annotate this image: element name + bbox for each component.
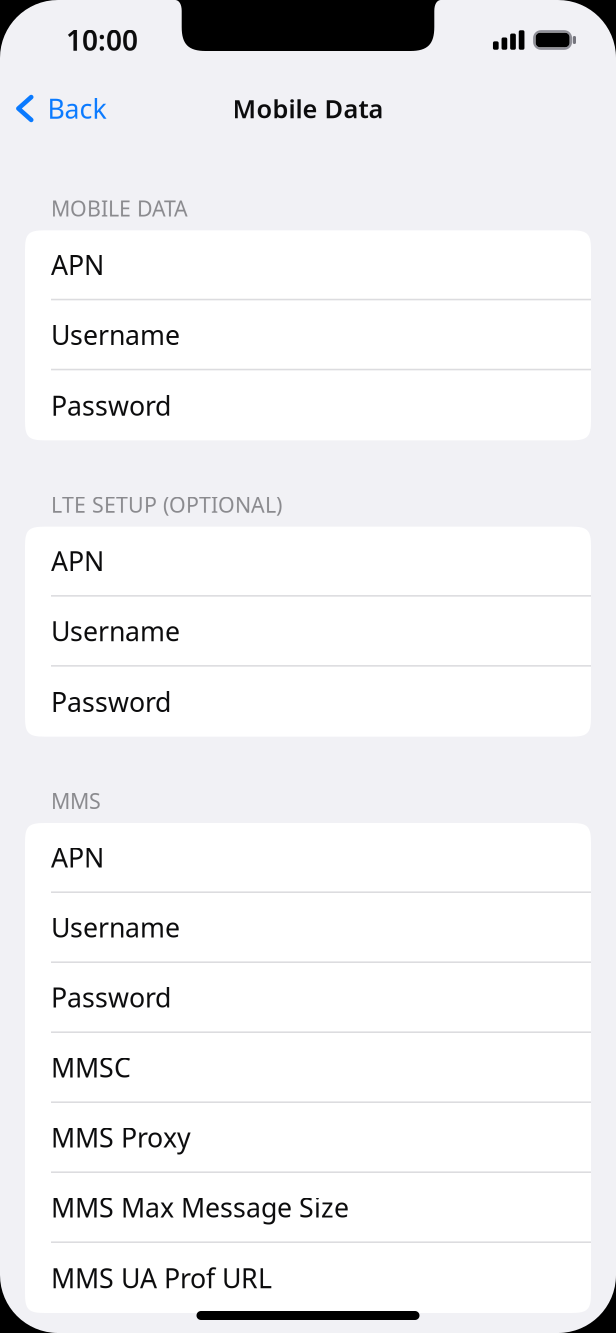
staticText: Username bbox=[51, 909, 180, 945]
button[interactable]: APN bbox=[25, 230, 591, 300]
staticText: APN bbox=[51, 543, 104, 579]
button[interactable]: Back bbox=[0, 82, 119, 135]
staticText: Username bbox=[51, 317, 180, 352]
staticText: MOBILE DATA bbox=[51, 194, 188, 222]
staticText: Mobile Data bbox=[232, 92, 383, 125]
button[interactable]: APN bbox=[25, 527, 591, 597]
staticText: MMS Proxy bbox=[51, 1119, 191, 1155]
button[interactable]: Password bbox=[25, 963, 591, 1033]
button[interactable]: Password bbox=[25, 370, 591, 440]
button[interactable]: Username bbox=[25, 597, 591, 667]
button[interactable]: MMS Proxy bbox=[25, 1103, 591, 1173]
staticText: Username bbox=[51, 613, 180, 649]
staticText: MMS Max Message Size bbox=[51, 1189, 349, 1225]
staticText: MMS bbox=[51, 787, 101, 815]
button[interactable]: Username bbox=[25, 893, 591, 963]
staticText: 10:00 bbox=[66, 21, 138, 59]
staticText: MMSC bbox=[51, 1049, 131, 1085]
button[interactable]: MMS UA Prof URL bbox=[25, 1243, 591, 1313]
staticText: LTE SETUP (OPTIONAL) bbox=[51, 490, 282, 519]
staticText: Password bbox=[51, 979, 171, 1015]
button[interactable]: Password bbox=[25, 667, 591, 737]
staticText: Back bbox=[48, 91, 107, 126]
staticText: Password bbox=[51, 684, 171, 719]
staticText: MMS UA Prof URL bbox=[51, 1260, 272, 1296]
button[interactable]: MMS Max Message Size bbox=[25, 1173, 591, 1243]
button[interactable]: APN bbox=[25, 823, 591, 893]
button[interactable]: MMSC bbox=[25, 1033, 591, 1103]
staticText: APN bbox=[51, 839, 104, 875]
staticText: APN bbox=[51, 247, 104, 282]
staticText: Password bbox=[51, 388, 171, 423]
button[interactable]: Username bbox=[25, 300, 591, 370]
